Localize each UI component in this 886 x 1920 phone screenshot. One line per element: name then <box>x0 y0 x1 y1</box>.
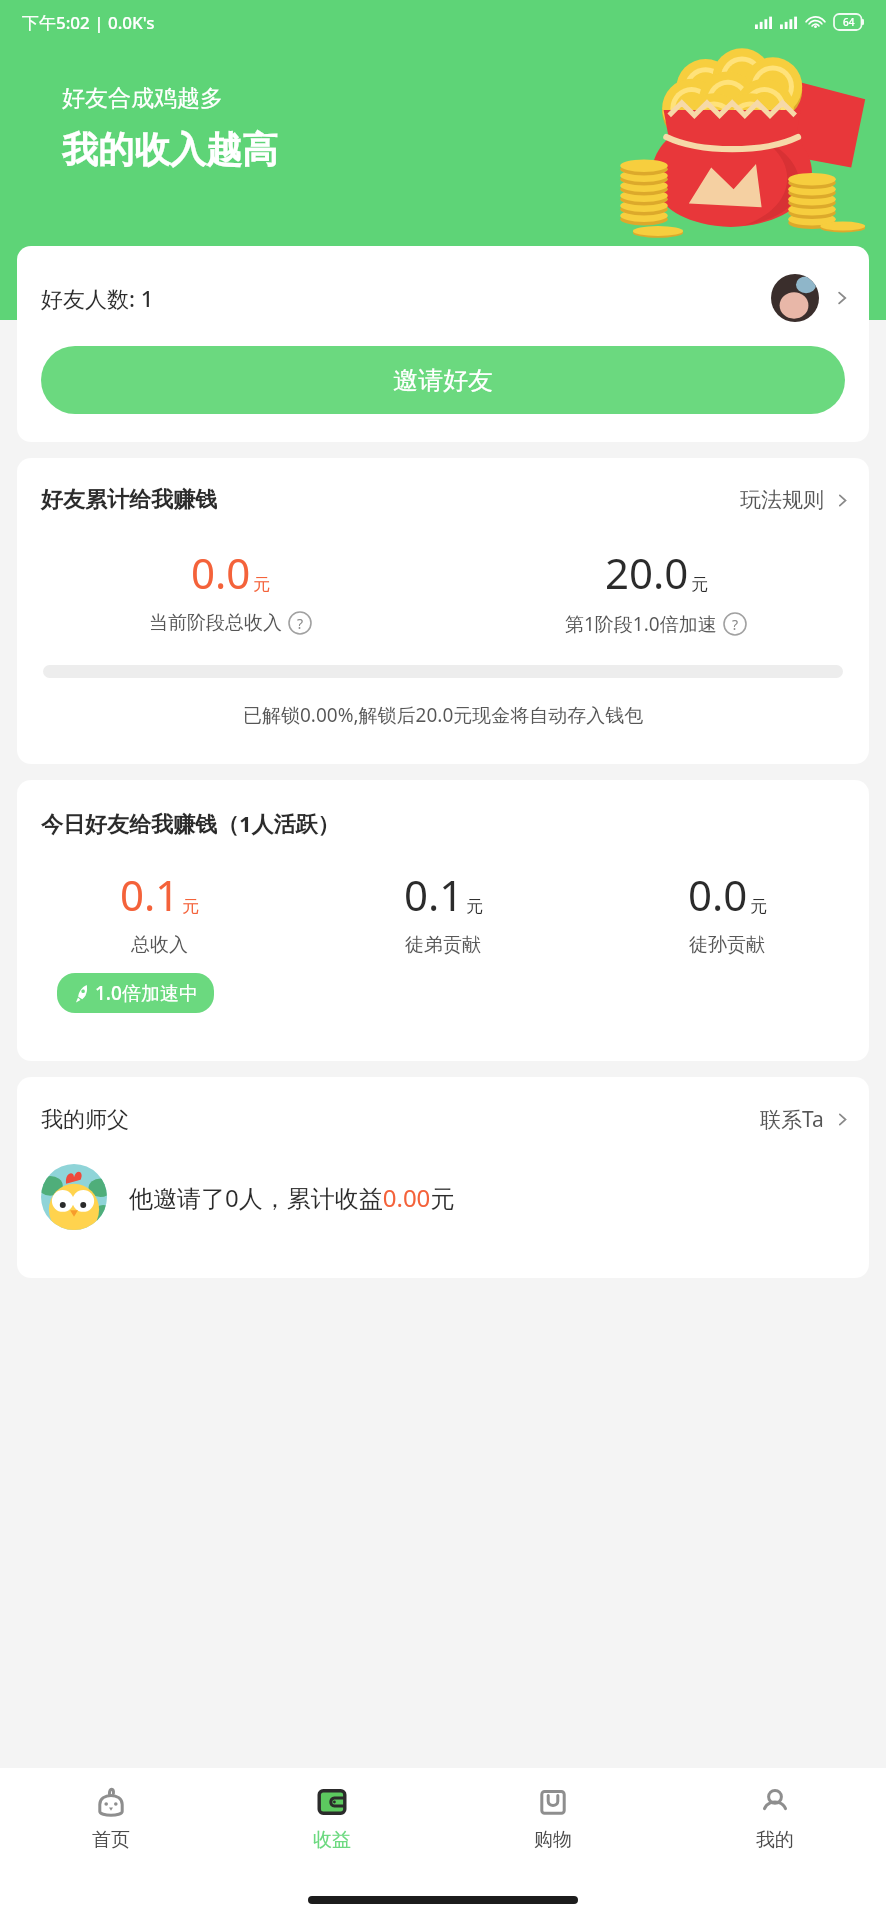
staticText: 徒孙贡献 <box>689 933 765 957</box>
staticText: 我的师父 <box>41 1106 129 1134</box>
staticText: 好友累计给我赚钱 <box>41 486 217 514</box>
staticText: 总收入 <box>131 933 188 957</box>
staticText: 下午5:02 | 0.0K's <box>22 11 155 34</box>
button[interactable]: 联系Ta <box>760 1105 851 1134</box>
button[interactable]: 收益 <box>221 1768 442 1880</box>
button[interactable]: 帮助 <box>723 612 747 636</box>
button[interactable]: 1.0倍加速中 <box>57 973 214 1013</box>
staticText: 联系Ta <box>760 1105 824 1134</box>
staticText: 0.0 <box>688 866 748 923</box>
staticText: 已解锁0.00%,解锁后20.0元现金将自动存入钱包 <box>243 702 644 728</box>
button[interactable]: 好友人数: 1 <box>17 246 869 332</box>
button[interactable]: 邀请好友 <box>41 346 845 414</box>
staticText: 邀请好友 <box>393 365 493 396</box>
button[interactable]: 首页 <box>0 1768 221 1880</box>
staticText: 我的 <box>756 1828 794 1852</box>
staticText: ? <box>297 614 304 633</box>
staticText: 徒弟贡献 <box>405 933 481 957</box>
staticText: 玩法规则 <box>740 487 824 513</box>
staticText: 元 <box>253 574 270 595</box>
staticText: 好友合成鸡越多 <box>62 84 223 113</box>
staticText: 首页 <box>92 1828 130 1852</box>
button[interactable]: 帮助 <box>288 611 312 635</box>
staticText: 当前阶段总收入 <box>149 611 282 635</box>
staticText: 元 <box>182 896 199 917</box>
staticText: 收益 <box>313 1828 351 1852</box>
staticText: 元 <box>750 896 767 917</box>
staticText: 64 <box>843 15 855 29</box>
staticText: 元 <box>466 896 483 917</box>
staticText: 0.1 <box>404 866 464 923</box>
staticText: 好友人数: 1 <box>41 283 154 313</box>
staticText: 20.0 <box>605 544 689 601</box>
staticText: 0.0 <box>191 544 251 601</box>
staticText: 购物 <box>534 1828 572 1852</box>
button[interactable]: 玩法规则 <box>740 487 851 513</box>
staticText: 第1阶段1.0倍加速 <box>565 611 717 637</box>
staticText: 元 <box>691 574 708 595</box>
button[interactable]: 我的 <box>664 1768 886 1880</box>
staticText: 我的收入越高 <box>62 127 278 172</box>
staticText: ? <box>732 615 739 634</box>
staticText: 1.0倍加速中 <box>95 980 198 1006</box>
staticText: 今日好友给我赚钱（1人活跃） <box>41 808 340 838</box>
staticText: 他邀请了0人，累计收益0.00元 <box>129 1181 455 1214</box>
button[interactable]: 购物 <box>442 1768 664 1880</box>
staticText: 0.1 <box>120 866 180 923</box>
